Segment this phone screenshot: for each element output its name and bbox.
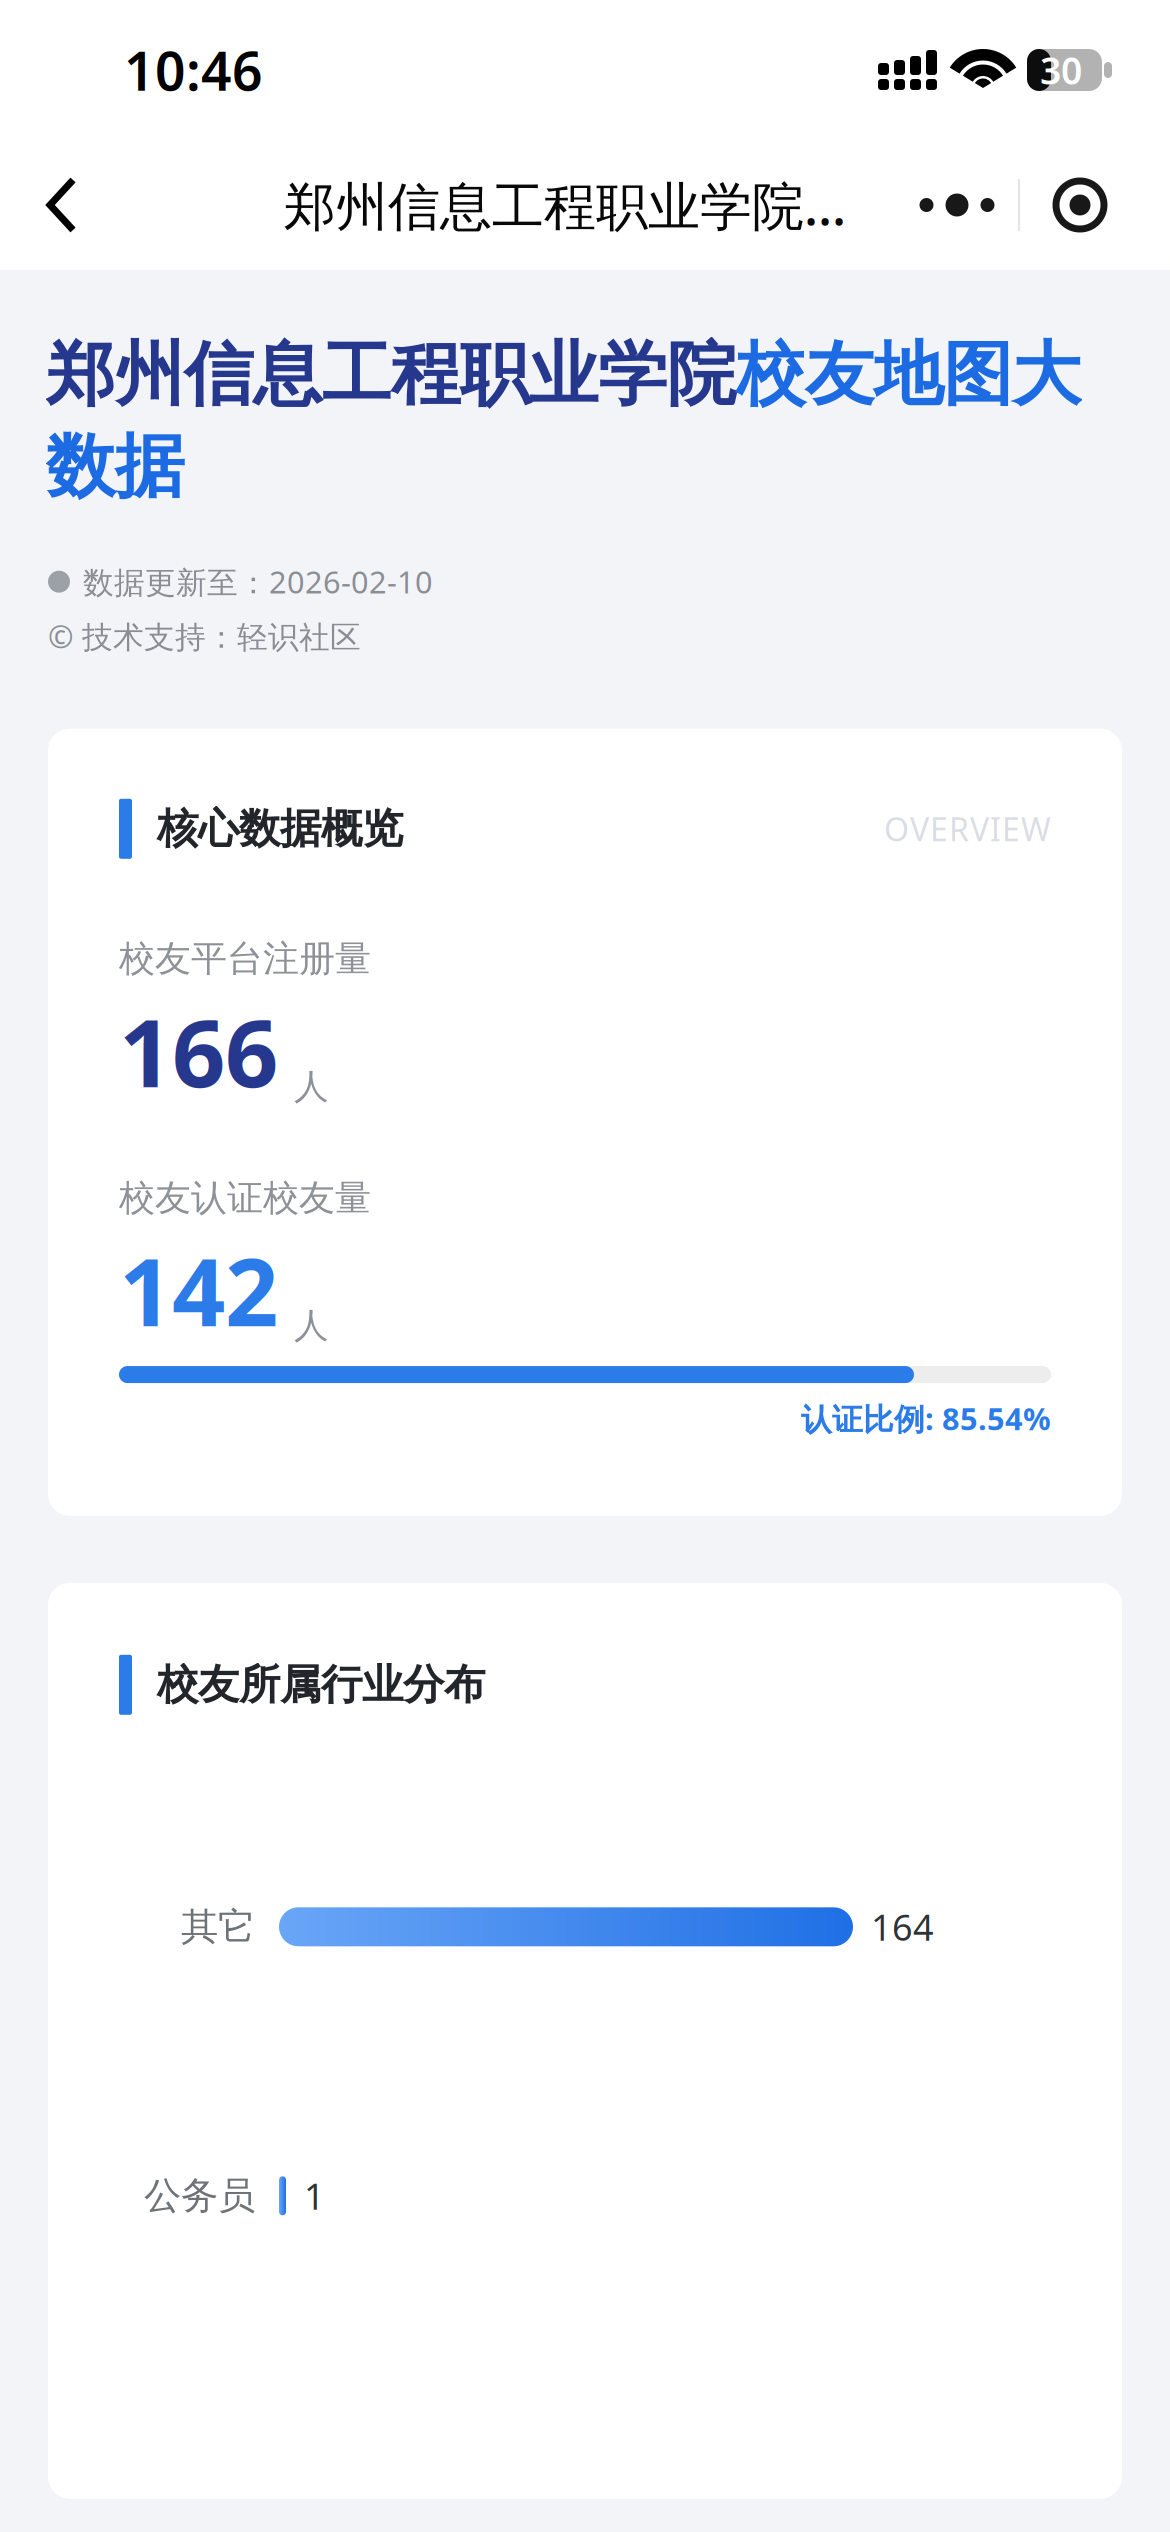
- staticText: 核心数据概览: [157, 803, 403, 854]
- staticText: © 技术支持：轻识社区: [48, 616, 361, 657]
- staticText: 数据更新至：2026-02-10: [83, 561, 433, 602]
- staticText: 公务员: [144, 2173, 255, 2219]
- staticText: 郑州信息工程职业学院校友地图大数据: [46, 332, 1081, 509]
- staticText: 142: [119, 1228, 278, 1352]
- staticText: 认证比例: 85.54%: [801, 1398, 1051, 1439]
- staticText: 校友所属行业分布: [157, 1659, 485, 1710]
- staticText: 人: [294, 1065, 329, 1108]
- button[interactable]: More: [896, 159, 1018, 251]
- staticText: 郑州信息工程职业学院...: [284, 170, 846, 240]
- staticText: 10:46: [124, 35, 263, 105]
- button[interactable]: Close mini program: [1020, 159, 1140, 251]
- staticText: 校友平台注册量: [119, 937, 371, 981]
- staticText: 166: [119, 989, 278, 1113]
- staticText: 164: [871, 1903, 934, 1951]
- staticText: 校友认证校友量: [119, 1176, 371, 1220]
- staticText: 30: [1040, 45, 1082, 95]
- button[interactable]: Back: [12, 155, 112, 255]
- staticText: OVERVIEW: [884, 807, 1051, 850]
- staticText: 人: [294, 1304, 329, 1347]
- staticText: 1: [304, 2172, 325, 2220]
- staticText: 其它: [181, 1904, 255, 1950]
